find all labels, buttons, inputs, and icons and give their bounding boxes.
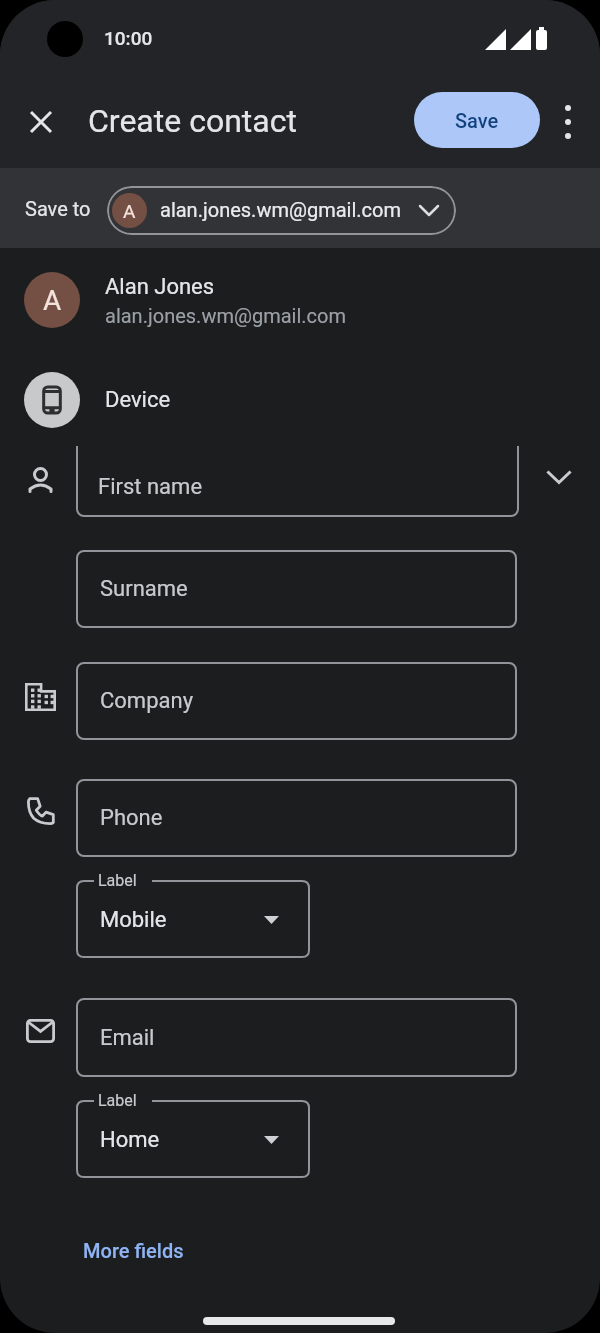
staticText: Home <box>100 1127 160 1153</box>
button[interactable]: A <box>0 262 600 338</box>
staticText: alan.jones.wm@gmail.com <box>105 304 346 327</box>
staticText: Phone <box>100 805 163 831</box>
staticText: Mobile <box>100 907 167 933</box>
button[interactable]: Device <box>0 366 600 434</box>
staticText: A <box>43 284 62 317</box>
staticText: Save <box>455 109 499 132</box>
button[interactable]: Email <box>76 998 517 1077</box>
button[interactable] <box>76 446 519 517</box>
staticText: Create contact <box>88 102 297 140</box>
staticText: First name <box>98 474 203 500</box>
button[interactable]: More fields <box>70 1228 200 1272</box>
staticText: Label <box>98 871 137 890</box>
staticText: Company <box>100 688 194 714</box>
button[interactable] <box>544 98 592 146</box>
staticText: alan.jones.wm@gmail.com <box>160 198 401 221</box>
button[interactable] <box>17 98 65 146</box>
button[interactable]: Label <box>76 1100 310 1178</box>
button[interactable]: Surname <box>76 550 517 628</box>
staticText: More fields <box>83 1239 184 1262</box>
button[interactable]: A <box>107 186 456 235</box>
button[interactable]: Company <box>76 662 517 740</box>
button[interactable]: Label <box>76 880 310 958</box>
staticText: Surname <box>100 576 188 602</box>
staticText: A <box>123 200 136 222</box>
staticText: Label <box>98 1091 137 1110</box>
button[interactable] <box>535 453 583 501</box>
button[interactable]: Phone <box>76 779 517 857</box>
staticText: Email <box>100 1025 155 1051</box>
staticText: 10:00 <box>104 27 153 49</box>
staticText: Alan Jones <box>105 274 215 300</box>
staticText: Save to <box>25 197 91 220</box>
staticText: Device <box>105 387 171 413</box>
button[interactable]: Save <box>414 92 540 148</box>
